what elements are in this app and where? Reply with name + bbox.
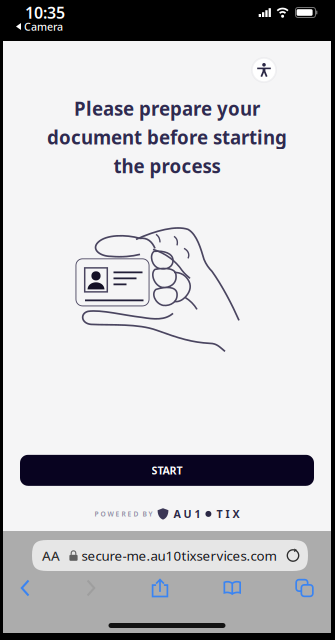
button[interactable]: Forward (86, 579, 97, 596)
button[interactable]: Bookmarks (223, 580, 241, 596)
staticText: A U 1 (173, 507, 200, 521)
staticText: document before starting (47, 125, 287, 150)
staticText: AA (42, 547, 60, 564)
button[interactable]: Tabs (296, 579, 313, 596)
button[interactable]: Share (151, 578, 168, 597)
staticText: Please prepare your (74, 96, 260, 121)
staticText: secure-me.au10tixservices.com (82, 547, 277, 564)
staticText: P O W E R E D B Y (95, 509, 153, 518)
button[interactable]: Accessibility options (251, 57, 277, 83)
button[interactable]: AA (32, 540, 308, 571)
staticText: T I X (216, 507, 239, 521)
button[interactable]: START (20, 455, 314, 486)
staticText: 10:35 (25, 2, 65, 23)
button[interactable]: Back (20, 579, 31, 596)
staticText: the process (113, 154, 220, 178)
staticText: START (151, 463, 182, 477)
staticText: Camera (24, 19, 63, 34)
